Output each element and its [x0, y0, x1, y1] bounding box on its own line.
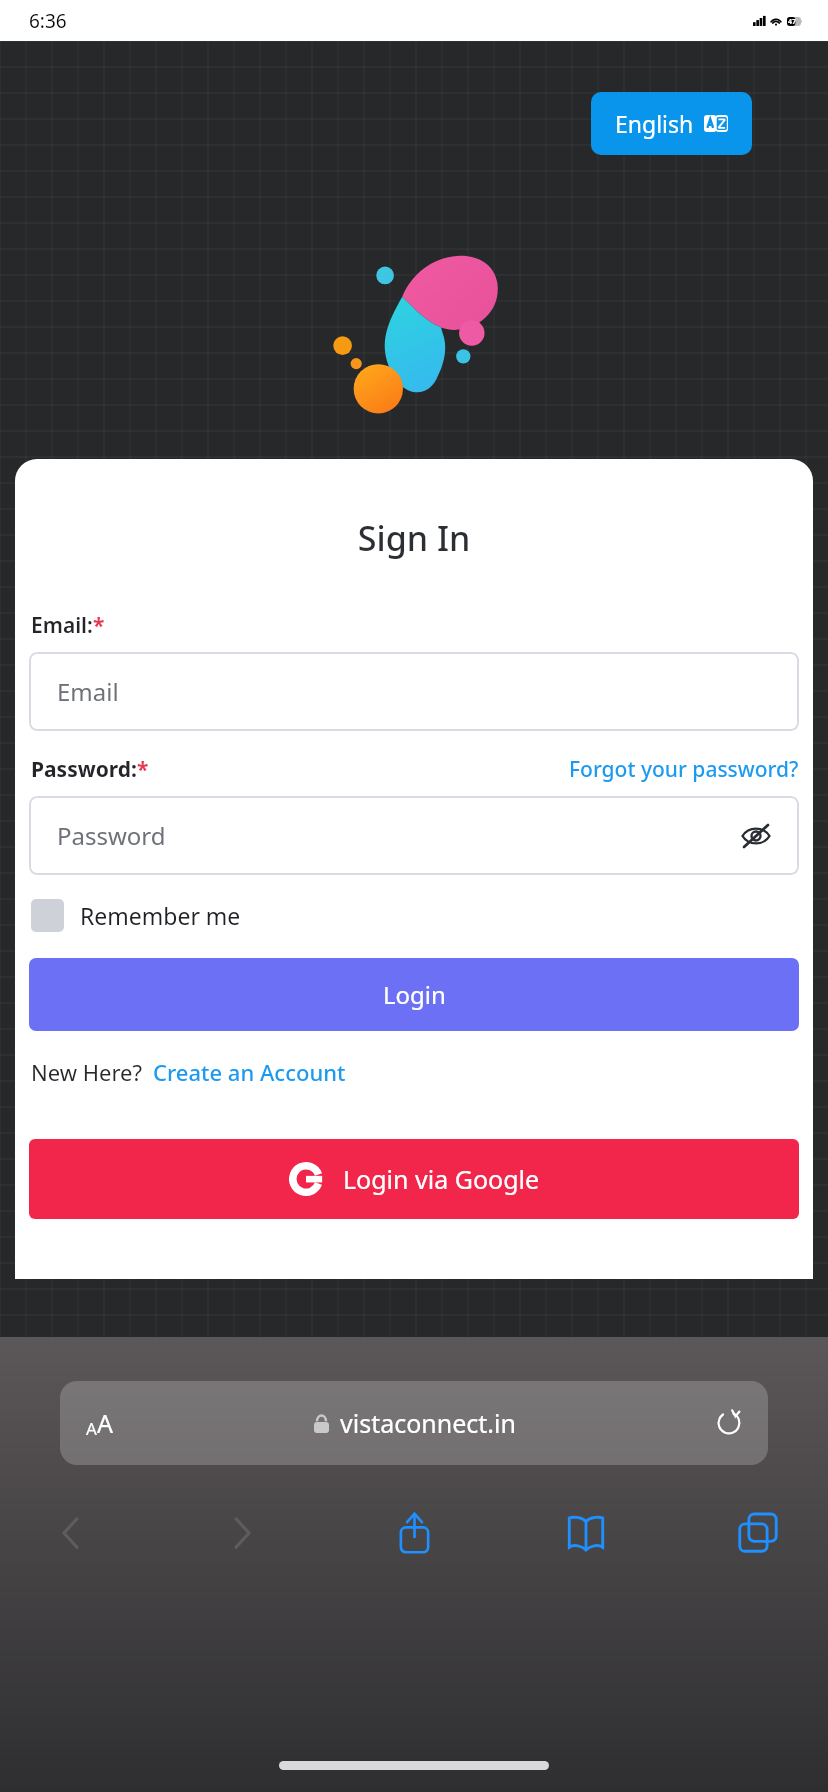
staticText: Sign In	[29, 515, 799, 561]
staticText: Login via Google	[343, 1162, 540, 1196]
staticText: Create an Account	[153, 1057, 346, 1087]
staticText: Remember me	[80, 900, 241, 931]
staticText: A	[97, 1406, 113, 1440]
staticText: Login	[383, 978, 446, 1011]
staticText: vistaconnect.in	[340, 1406, 516, 1440]
button[interactable]: Password	[29, 796, 799, 875]
button[interactable]: Back	[40, 1503, 100, 1563]
staticText: 6:36	[29, 8, 67, 34]
button[interactable]: Forward	[212, 1503, 272, 1563]
button[interactable]: Email	[29, 652, 799, 731]
button[interactable]: Share	[384, 1503, 444, 1563]
button[interactable]: Forgot your password?	[569, 755, 799, 784]
button[interactable]: Bookmarks	[556, 1503, 616, 1563]
staticText: Password	[57, 819, 166, 852]
staticText: Password:	[31, 755, 137, 784]
staticText: Email	[57, 675, 119, 708]
other: Show password	[741, 823, 771, 849]
staticText: Forgot your password?	[569, 755, 799, 784]
other: Reload	[716, 1410, 742, 1436]
button[interactable]: Remember me	[29, 897, 241, 934]
staticText: Email:	[31, 611, 93, 640]
button[interactable]: English	[591, 92, 752, 155]
button[interactable]: A	[60, 1381, 768, 1465]
staticText: *	[93, 611, 105, 640]
other: Translate	[704, 115, 728, 132]
staticText: New Here?	[31, 1057, 143, 1087]
staticText: A	[86, 1417, 97, 1440]
button[interactable]: Login	[29, 958, 799, 1031]
staticText: English	[615, 108, 694, 139]
button[interactable]: Tabs	[728, 1503, 788, 1563]
staticText: 47	[788, 17, 797, 26]
button[interactable]: Login via Google	[29, 1139, 799, 1219]
staticText: *	[137, 755, 149, 784]
button[interactable]: Create an Account	[153, 1057, 346, 1087]
